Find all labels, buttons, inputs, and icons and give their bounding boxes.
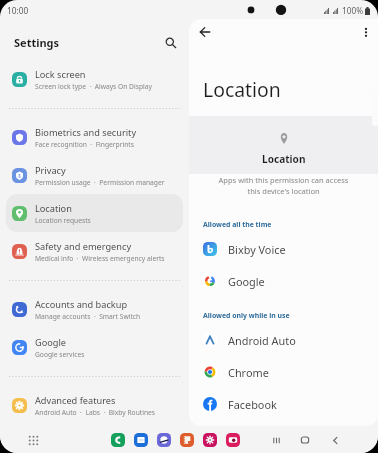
staticText: Location (35, 202, 72, 215)
staticText: Medical info · Wireless emergency alerts (35, 254, 165, 263)
staticText: Lock screen (35, 68, 86, 81)
staticText: Google (35, 336, 67, 349)
staticText: Location requests (35, 216, 91, 225)
staticText: Bixby Voice (228, 242, 286, 257)
staticText: Google services (35, 350, 85, 359)
staticText: 100% (342, 5, 364, 16)
button[interactable]: Biometrics and security (6, 118, 183, 156)
staticText: Android Auto · Labs · Bixby Routines (35, 408, 156, 417)
staticText: Apps with this permission can access thi… (189, 175, 378, 196)
button[interactable]: Google (6, 328, 183, 366)
button[interactable]: Safety and emergency (6, 232, 183, 270)
button[interactable]: Messages (134, 433, 148, 447)
staticText: Advanced features (35, 394, 116, 407)
button[interactable]: Android Auto (203, 324, 378, 356)
button[interactable]: Bixby Voice (203, 233, 378, 265)
button[interactable]: Privacy (6, 156, 183, 194)
button[interactable]: Recents (268, 432, 284, 448)
button[interactable]: Back (327, 432, 343, 448)
staticText: Allowed only while in use (203, 311, 290, 320)
staticText: 10:00 (7, 5, 29, 16)
button[interactable]: Phone (111, 433, 125, 447)
staticText: Screen lock type · Always On Display (35, 82, 152, 91)
staticText: Permission usage · Permission manager (35, 178, 165, 187)
button[interactable]: Camera (226, 433, 240, 447)
button[interactable]: Lock screen (6, 60, 183, 98)
staticText: Safety and emergency (35, 240, 132, 253)
staticText: Chrome (228, 365, 269, 380)
staticText: Android Auto (228, 333, 296, 348)
button[interactable]: Facebook (203, 388, 378, 420)
button[interactable]: Notes (180, 433, 194, 447)
staticText: Allowed all the time (203, 220, 272, 229)
button[interactable]: Home (297, 432, 313, 448)
button[interactable]: Chrome (203, 356, 378, 388)
staticText: Privacy (35, 164, 66, 177)
staticText: Location (262, 152, 306, 166)
staticText: Face recognition · Fingerprints (35, 140, 134, 149)
staticText: Location (203, 76, 281, 102)
staticText: Biometrics and security (35, 126, 137, 139)
button[interactable]: Location (6, 194, 183, 232)
button[interactable]: Accounts and backup (6, 290, 183, 328)
staticText: Google (228, 274, 265, 289)
staticText: Manage accounts · Smart Switch (35, 312, 141, 321)
button[interactable]: More options (356, 22, 376, 42)
button[interactable]: Search (160, 32, 182, 54)
staticText: Settings (14, 35, 60, 50)
button[interactable]: Galaxy Store (203, 433, 217, 447)
button[interactable]: Back (195, 22, 215, 42)
button[interactable]: Internet (157, 433, 171, 447)
button[interactable]: Apps (24, 431, 42, 449)
staticText: Facebook (228, 397, 277, 412)
button[interactable]: Advanced features (6, 386, 183, 424)
button[interactable]: Google (203, 265, 378, 297)
staticText: Accounts and backup (35, 298, 128, 311)
